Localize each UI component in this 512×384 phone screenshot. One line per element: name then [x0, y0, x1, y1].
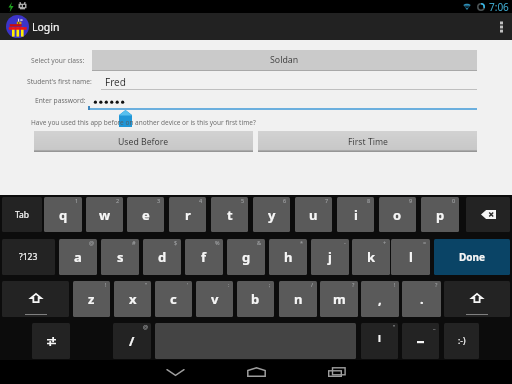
- button[interactable]: Recent apps: [317, 360, 357, 384]
- staticText: First Time: [348, 136, 388, 148]
- button[interactable]: j: [311, 239, 349, 275]
- staticText: d: [158, 248, 167, 266]
- staticText: :: [228, 281, 230, 288]
- button[interactable]: v: [196, 281, 233, 317]
- button[interactable]: a: [59, 239, 97, 275]
- staticText: i: [354, 206, 358, 224]
- staticText: g: [242, 248, 251, 266]
- staticText: *: [300, 239, 304, 246]
- staticText: v: [211, 290, 219, 308]
- staticText: %: [215, 239, 220, 246]
- staticText: k: [367, 248, 376, 266]
- staticText: y: [268, 206, 276, 224]
- button[interactable]: n: [279, 281, 317, 317]
- staticText: Login: [32, 20, 60, 34]
- staticText: x: [129, 290, 137, 308]
- button[interactable]: z: [73, 281, 110, 317]
- button[interactable]: ,: [361, 281, 399, 317]
- staticText: ;: [269, 281, 271, 288]
- staticText: ,: [378, 290, 382, 308]
- staticText: Soldan: [270, 54, 299, 66]
- button[interactable]: ⌫: [466, 197, 510, 232]
- staticText: 6: [283, 197, 287, 204]
- staticText: t: [227, 206, 233, 224]
- button[interactable]: Done: [434, 239, 510, 275]
- staticText: e: [142, 206, 150, 224]
- staticText: 7: [325, 197, 329, 204]
- button[interactable]: Hide keyboard: [155, 360, 195, 384]
- staticText: h: [284, 248, 293, 266]
- staticText: Used Before: [118, 136, 169, 148]
- button[interactable]: Tab: [2, 197, 42, 232]
- button[interactable]: First Time: [258, 131, 477, 152]
- staticText: 0: [452, 197, 456, 204]
- staticText: w: [99, 206, 111, 224]
- staticText: 2: [116, 197, 120, 204]
- button[interactable]: e: [127, 197, 164, 232]
- button[interactable]: .: [402, 281, 441, 317]
- staticText: !: [394, 281, 396, 288]
- staticText: n: [294, 290, 303, 308]
- button[interactable]: :-): [444, 323, 479, 359]
- staticText: Fred: [105, 75, 126, 89]
- button[interactable]: k: [352, 239, 390, 275]
- staticText: 9: [409, 197, 413, 204]
- button[interactable]: b: [237, 281, 274, 317]
- button[interactable]: Home: [236, 360, 276, 384]
- staticText: 5: [241, 197, 245, 204]
- button[interactable]: Used Before: [34, 131, 253, 152]
- staticText: Tab: [15, 209, 30, 221]
- button[interactable]: i: [337, 197, 374, 232]
- staticText: a: [74, 248, 82, 266]
- staticText: 7:06: [489, 0, 509, 13]
- button[interactable]: h: [269, 239, 307, 275]
- button[interactable]: ⚙: [32, 323, 70, 359]
- button[interactable]: f: [185, 239, 223, 275]
- button[interactable]: p: [421, 197, 459, 232]
- staticText: Done: [459, 250, 486, 264]
- staticText: -: [344, 239, 346, 246]
- button[interactable]: q: [44, 197, 82, 232]
- button[interactable]: y: [253, 197, 290, 232]
- button[interactable]: ?123: [2, 239, 55, 275]
- button[interactable]: g: [227, 239, 265, 275]
- staticText: ?123: [19, 251, 38, 263]
- staticText: 3: [157, 197, 161, 204]
- button[interactable]: u: [295, 197, 332, 232]
- staticText: #: [132, 239, 136, 246]
- button[interactable]: ': [361, 323, 398, 359]
- button[interactable]: x: [114, 281, 151, 317]
- staticText: @: [89, 239, 94, 246]
- staticText: .: [420, 290, 424, 308]
- staticText: ": [145, 281, 148, 288]
- button[interactable]: ⇧: [444, 281, 510, 317]
- button[interactable]: l: [391, 239, 430, 275]
- staticText: 1: [75, 197, 79, 204]
- button[interactable]: /: [113, 323, 151, 359]
- staticText: Select your class:: [31, 56, 85, 65]
- button[interactable]: -: [402, 323, 439, 359]
- button[interactable]: More options: [490, 13, 512, 40]
- button[interactable]: w: [86, 197, 123, 232]
- staticText: p: [436, 206, 445, 224]
- button[interactable]: Soldan: [92, 50, 477, 70]
- button[interactable]: o: [379, 197, 416, 232]
- button[interactable]: d: [143, 239, 181, 275]
- staticText: +: [383, 239, 387, 246]
- button[interactable]: t: [211, 197, 248, 232]
- staticText: z: [88, 290, 95, 308]
- staticText: q: [59, 206, 68, 224]
- staticText: :-): [458, 335, 466, 347]
- button[interactable]: r: [169, 197, 206, 232]
- staticText: @: [143, 323, 148, 330]
- staticText: “: [393, 323, 395, 330]
- button[interactable]: c: [155, 281, 192, 317]
- button[interactable]: m: [320, 281, 358, 317]
- staticText: f: [201, 248, 207, 266]
- staticText: o: [393, 206, 402, 224]
- button[interactable]: ⇧: [2, 281, 69, 317]
- button[interactable]: s: [101, 239, 139, 275]
- staticText: !: [105, 281, 107, 288]
- staticText: =: [423, 239, 427, 246]
